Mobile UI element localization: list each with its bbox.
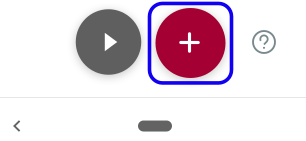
button[interactable]: Add xyxy=(151,4,229,80)
button[interactable]: Play xyxy=(75,9,141,75)
button[interactable]: Help xyxy=(252,30,276,54)
button[interactable]: Back xyxy=(0,104,34,141)
